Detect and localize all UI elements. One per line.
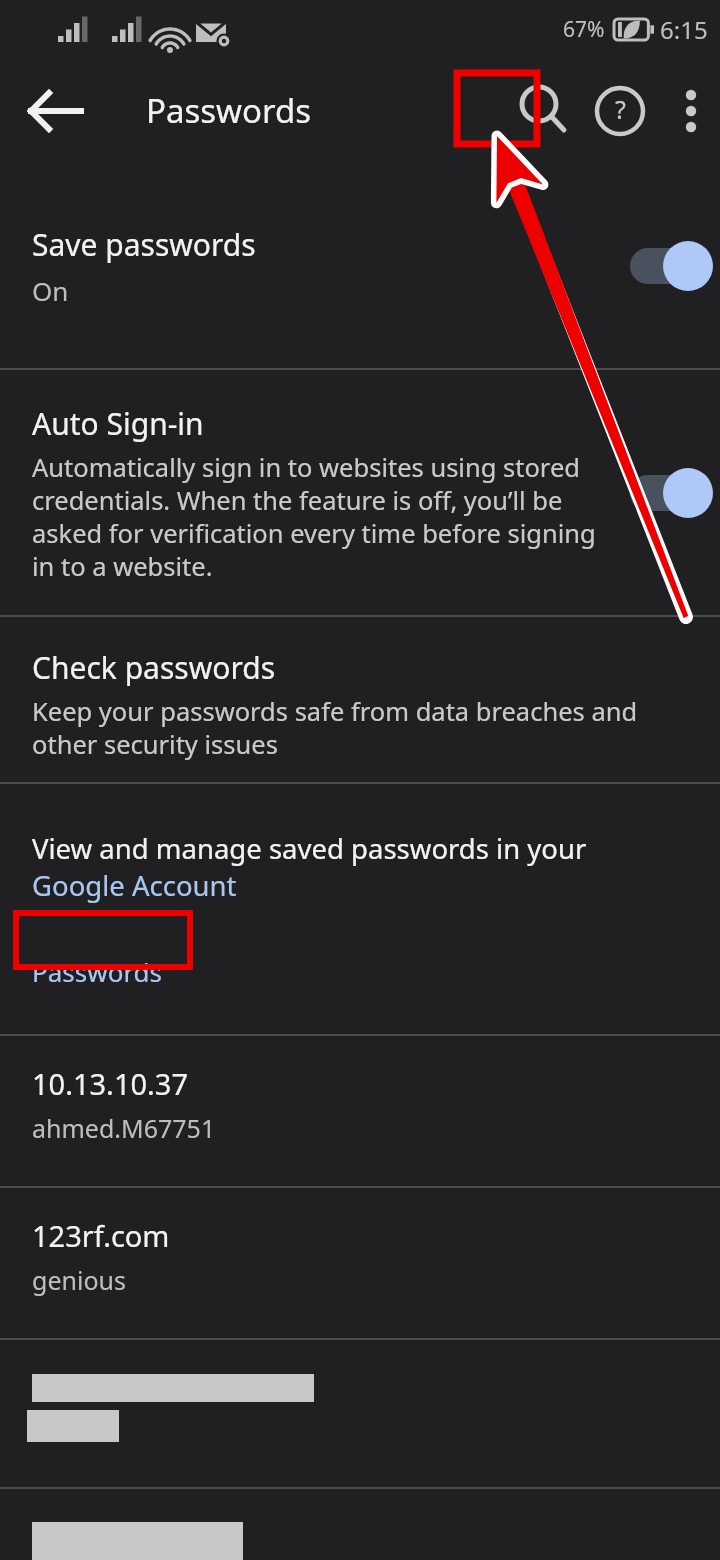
staticText: 6:15	[660, 13, 708, 46]
button[interactable]: View and manage saved passwords in your	[0, 784, 720, 904]
button[interactable]: .up	[0, 1489, 720, 1560]
button[interactable]: Help	[582, 73, 658, 149]
staticText: Passwords	[146, 88, 312, 133]
staticText: Automatically sign in to websites using …	[32, 450, 606, 583]
staticText: 10.13.10.37	[32, 1064, 189, 1103]
button[interactable]: More options	[658, 73, 720, 149]
staticText: genious	[32, 1263, 126, 1297]
staticText: Keep your passwords safe from data breac…	[32, 694, 680, 761]
staticText: ahmed.M67751	[32, 1111, 216, 1145]
button[interactable]: 123rf.com	[0, 1188, 720, 1338]
staticText: 67%	[563, 15, 605, 44]
button[interactable]: Check passwords	[0, 617, 720, 782]
button[interactable]: Back	[22, 77, 90, 145]
staticText: 123rf.com	[32, 1216, 170, 1255]
staticText: Save passwords	[32, 224, 256, 265]
button[interactable]: Save passwords	[0, 163, 720, 368]
button[interactable]: Passwords	[32, 954, 163, 989]
staticText: View and manage saved passwords in your	[32, 830, 587, 867]
staticText: Check passwords	[32, 647, 275, 688]
staticText: Passwords	[32, 954, 163, 989]
button[interactable]: Search	[502, 71, 582, 151]
staticText: ?	[615, 92, 626, 126]
button[interactable]: 10.13.10.37	[0, 1036, 720, 1186]
staticText: Auto Sign-in	[32, 403, 204, 444]
button[interactable]: Auto Sign-in	[0, 370, 720, 615]
staticText: Google Account	[32, 867, 237, 904]
button[interactable]	[0, 1340, 720, 1487]
staticText: On	[32, 273, 69, 308]
